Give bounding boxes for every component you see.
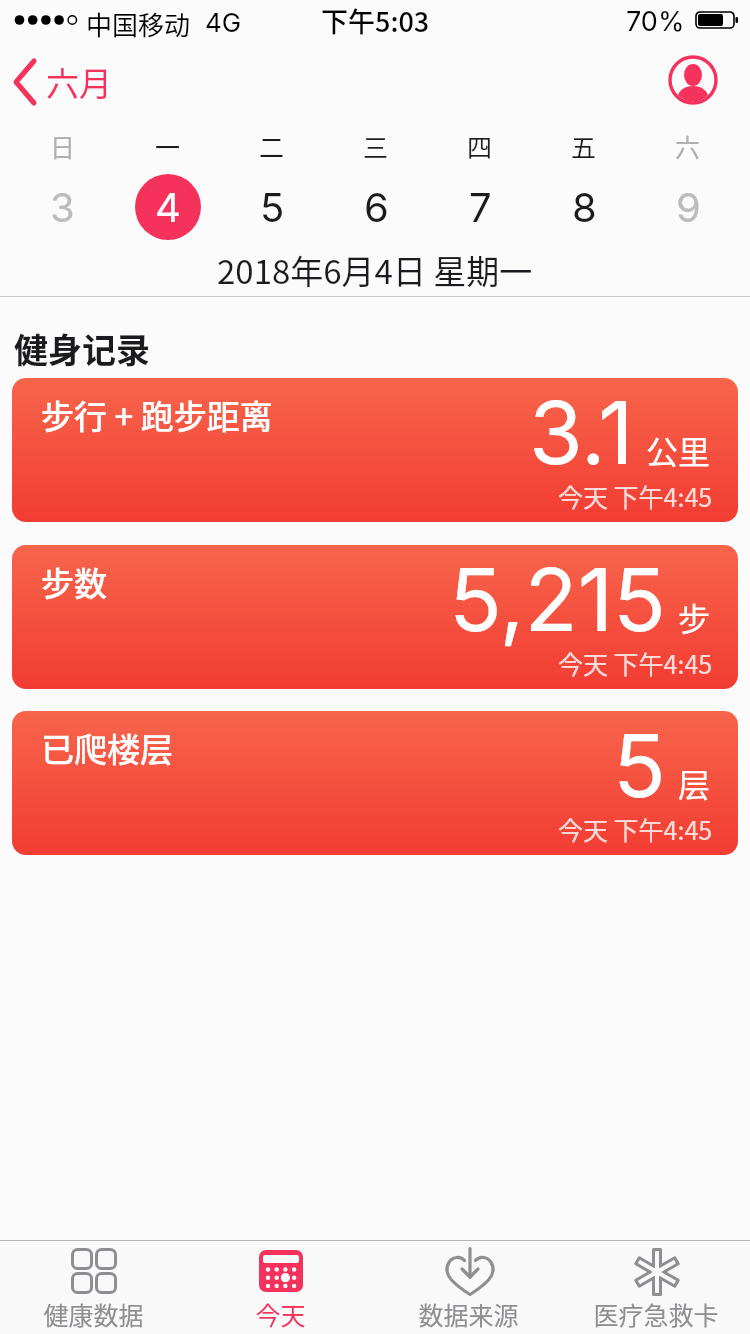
staticText: 三 bbox=[363, 128, 389, 160]
button[interactable]: 步行 + 跑步距离 bbox=[12, 378, 738, 522]
staticText: 健康数据 bbox=[43, 1296, 144, 1332]
button[interactable]: 医疗急救卡 bbox=[562, 1241, 750, 1334]
button[interactable]: 8 bbox=[532, 172, 636, 242]
staticText: 今天 bbox=[255, 1296, 306, 1332]
staticText: 二 bbox=[259, 128, 285, 160]
staticText: 层 bbox=[678, 760, 711, 806]
button[interactable]: 今天 bbox=[187, 1241, 374, 1334]
staticText: 医疗急救卡 bbox=[593, 1296, 719, 1332]
staticText: 8 bbox=[572, 183, 597, 231]
button[interactable]: 3 bbox=[10, 172, 115, 242]
button[interactable]: 6 bbox=[324, 172, 428, 242]
staticText: 4 bbox=[155, 183, 181, 231]
staticText: 今天 下午4:45 bbox=[558, 811, 713, 847]
staticText: 数据来源 bbox=[418, 1296, 519, 1332]
button[interactable] bbox=[668, 55, 718, 105]
staticText: 5 bbox=[613, 713, 666, 818]
staticText: 4G bbox=[205, 7, 242, 38]
staticText: 3 bbox=[50, 183, 75, 231]
staticText: 六月 bbox=[46, 58, 112, 106]
staticText: 步数 bbox=[41, 558, 107, 606]
staticText: 今天 下午4:45 bbox=[558, 645, 713, 681]
staticText: 步 bbox=[678, 594, 711, 640]
staticText: 2018年6月4日 星期一 bbox=[217, 246, 533, 288]
staticText: 3.1 bbox=[529, 380, 634, 485]
button[interactable]: 7 bbox=[428, 172, 532, 242]
staticText: 中国移动 bbox=[86, 5, 191, 43]
staticText: 步行 + 跑步距离 bbox=[41, 391, 273, 439]
button[interactable]: 数据来源 bbox=[374, 1241, 562, 1334]
staticText: 今天 下午4:45 bbox=[558, 478, 713, 514]
button[interactable]: 4 bbox=[115, 172, 220, 242]
staticText: 四 bbox=[467, 128, 493, 160]
staticText: 5 bbox=[260, 183, 285, 231]
button[interactable]: 9 bbox=[636, 172, 740, 242]
button[interactable]: 健康数据 bbox=[0, 1241, 187, 1334]
button[interactable]: 步数 bbox=[12, 545, 738, 689]
staticText: 7 bbox=[469, 183, 492, 231]
staticText: 下午5:03 bbox=[321, 1, 430, 40]
button[interactable]: 六月 bbox=[0, 40, 112, 124]
staticText: 一 bbox=[155, 128, 181, 160]
staticText: 70% bbox=[626, 5, 685, 38]
staticText: 公里 bbox=[646, 427, 711, 473]
staticText: 六 bbox=[675, 128, 701, 160]
button[interactable]: 已爬楼层 bbox=[12, 711, 738, 855]
staticText: 5,215 bbox=[449, 547, 666, 652]
button[interactable]: 5 bbox=[220, 172, 324, 242]
staticText: 健身记录 bbox=[14, 324, 150, 373]
staticText: 6 bbox=[364, 183, 389, 231]
staticText: 已爬楼层 bbox=[41, 724, 173, 772]
staticText: 9 bbox=[676, 183, 701, 231]
staticText: 五 bbox=[571, 128, 597, 160]
staticText: 日 bbox=[50, 128, 76, 160]
